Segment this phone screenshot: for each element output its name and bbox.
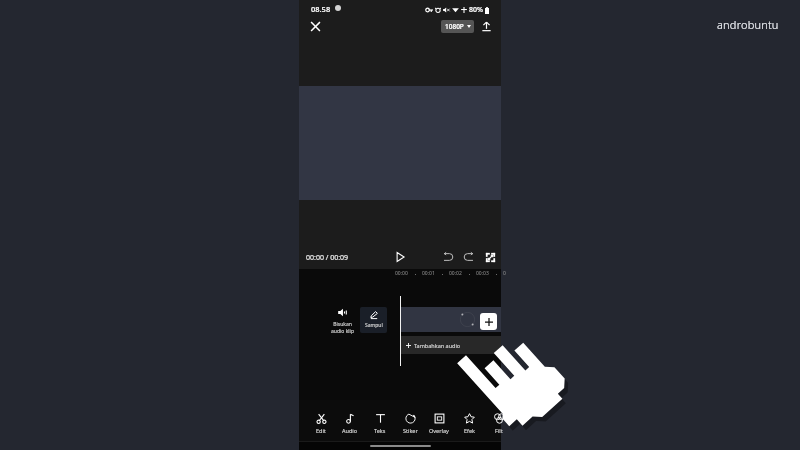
staticText: Stiker [403, 427, 418, 434]
button[interactable]: Close [303, 14, 328, 39]
button[interactable]: Filt [485, 413, 513, 434]
staticText: Filt [495, 427, 503, 434]
button[interactable]: Fullscreen [478, 245, 502, 269]
staticText: 00:00 / 00:09 [306, 253, 349, 263]
button[interactable]: Overlay [425, 413, 453, 434]
button[interactable]: Redo [457, 245, 481, 269]
button[interactable]: Stiker [396, 413, 424, 434]
button[interactable]: Teks [366, 413, 394, 434]
button[interactable]: Bisukan audio klip [327, 308, 357, 335]
button[interactable] [400, 307, 501, 332]
staticText: Bisukan audio klip [331, 321, 354, 335]
button[interactable]: Sampul [360, 307, 387, 333]
button[interactable]: Undo [436, 245, 460, 269]
staticText: 1080P [445, 22, 464, 31]
staticText: Audio [342, 427, 358, 434]
staticText: 0 [503, 270, 506, 277]
button[interactable]: Export [474, 14, 499, 39]
staticText: 80% [469, 5, 483, 15]
staticText: 08.58 [311, 4, 331, 14]
staticText: Tambahkan audio [414, 342, 461, 349]
button[interactable]: Add clip [480, 313, 497, 330]
staticText: androbuntu [717, 17, 779, 32]
staticText: 00:00 [395, 270, 408, 277]
staticText: 00:03 [476, 270, 489, 277]
staticText: 00:02 [449, 270, 462, 277]
staticText: Sampul [365, 322, 383, 329]
staticText: Teks [374, 427, 386, 434]
staticText: 00:01 [422, 270, 435, 277]
button[interactable]: Edit [307, 413, 335, 434]
staticText: Overlay [429, 427, 449, 434]
button[interactable]: Tambahkan audio [400, 336, 501, 354]
button[interactable]: Play [388, 245, 412, 269]
staticText: Efek [464, 427, 475, 434]
button[interactable]: Audio [336, 413, 364, 434]
staticText: Edit [316, 427, 326, 434]
button[interactable]: 1080P [441, 20, 474, 33]
button[interactable]: Efek [455, 413, 483, 434]
